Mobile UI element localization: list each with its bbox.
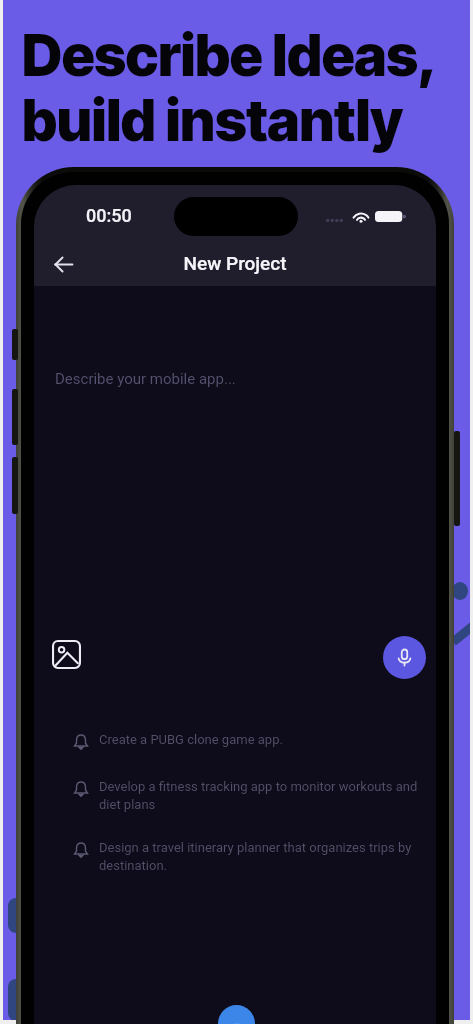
staticText: Create a PUBG clone game app.	[99, 732, 283, 747]
staticText: Describe Ideas, build instantly	[22, 21, 438, 155]
button[interactable]: Create a PUBG clone game app.	[34, 723, 436, 760]
staticText: Design a travel itinerary planner that o…	[99, 840, 423, 873]
button[interactable]: Voice input	[383, 636, 426, 679]
staticText: 00:50	[86, 205, 132, 226]
button[interactable]: Back	[43, 244, 83, 284]
staticText: New Project	[34, 252, 436, 274]
button[interactable]: Develop a fitness tracking app to monito…	[34, 770, 436, 821]
button[interactable]: Attach image	[49, 637, 83, 671]
staticText: Describe your mobile app...	[55, 370, 236, 388]
staticText: Develop a fitness tracking app to monito…	[99, 779, 423, 812]
button[interactable]: Design a travel itinerary planner that o…	[34, 831, 436, 882]
